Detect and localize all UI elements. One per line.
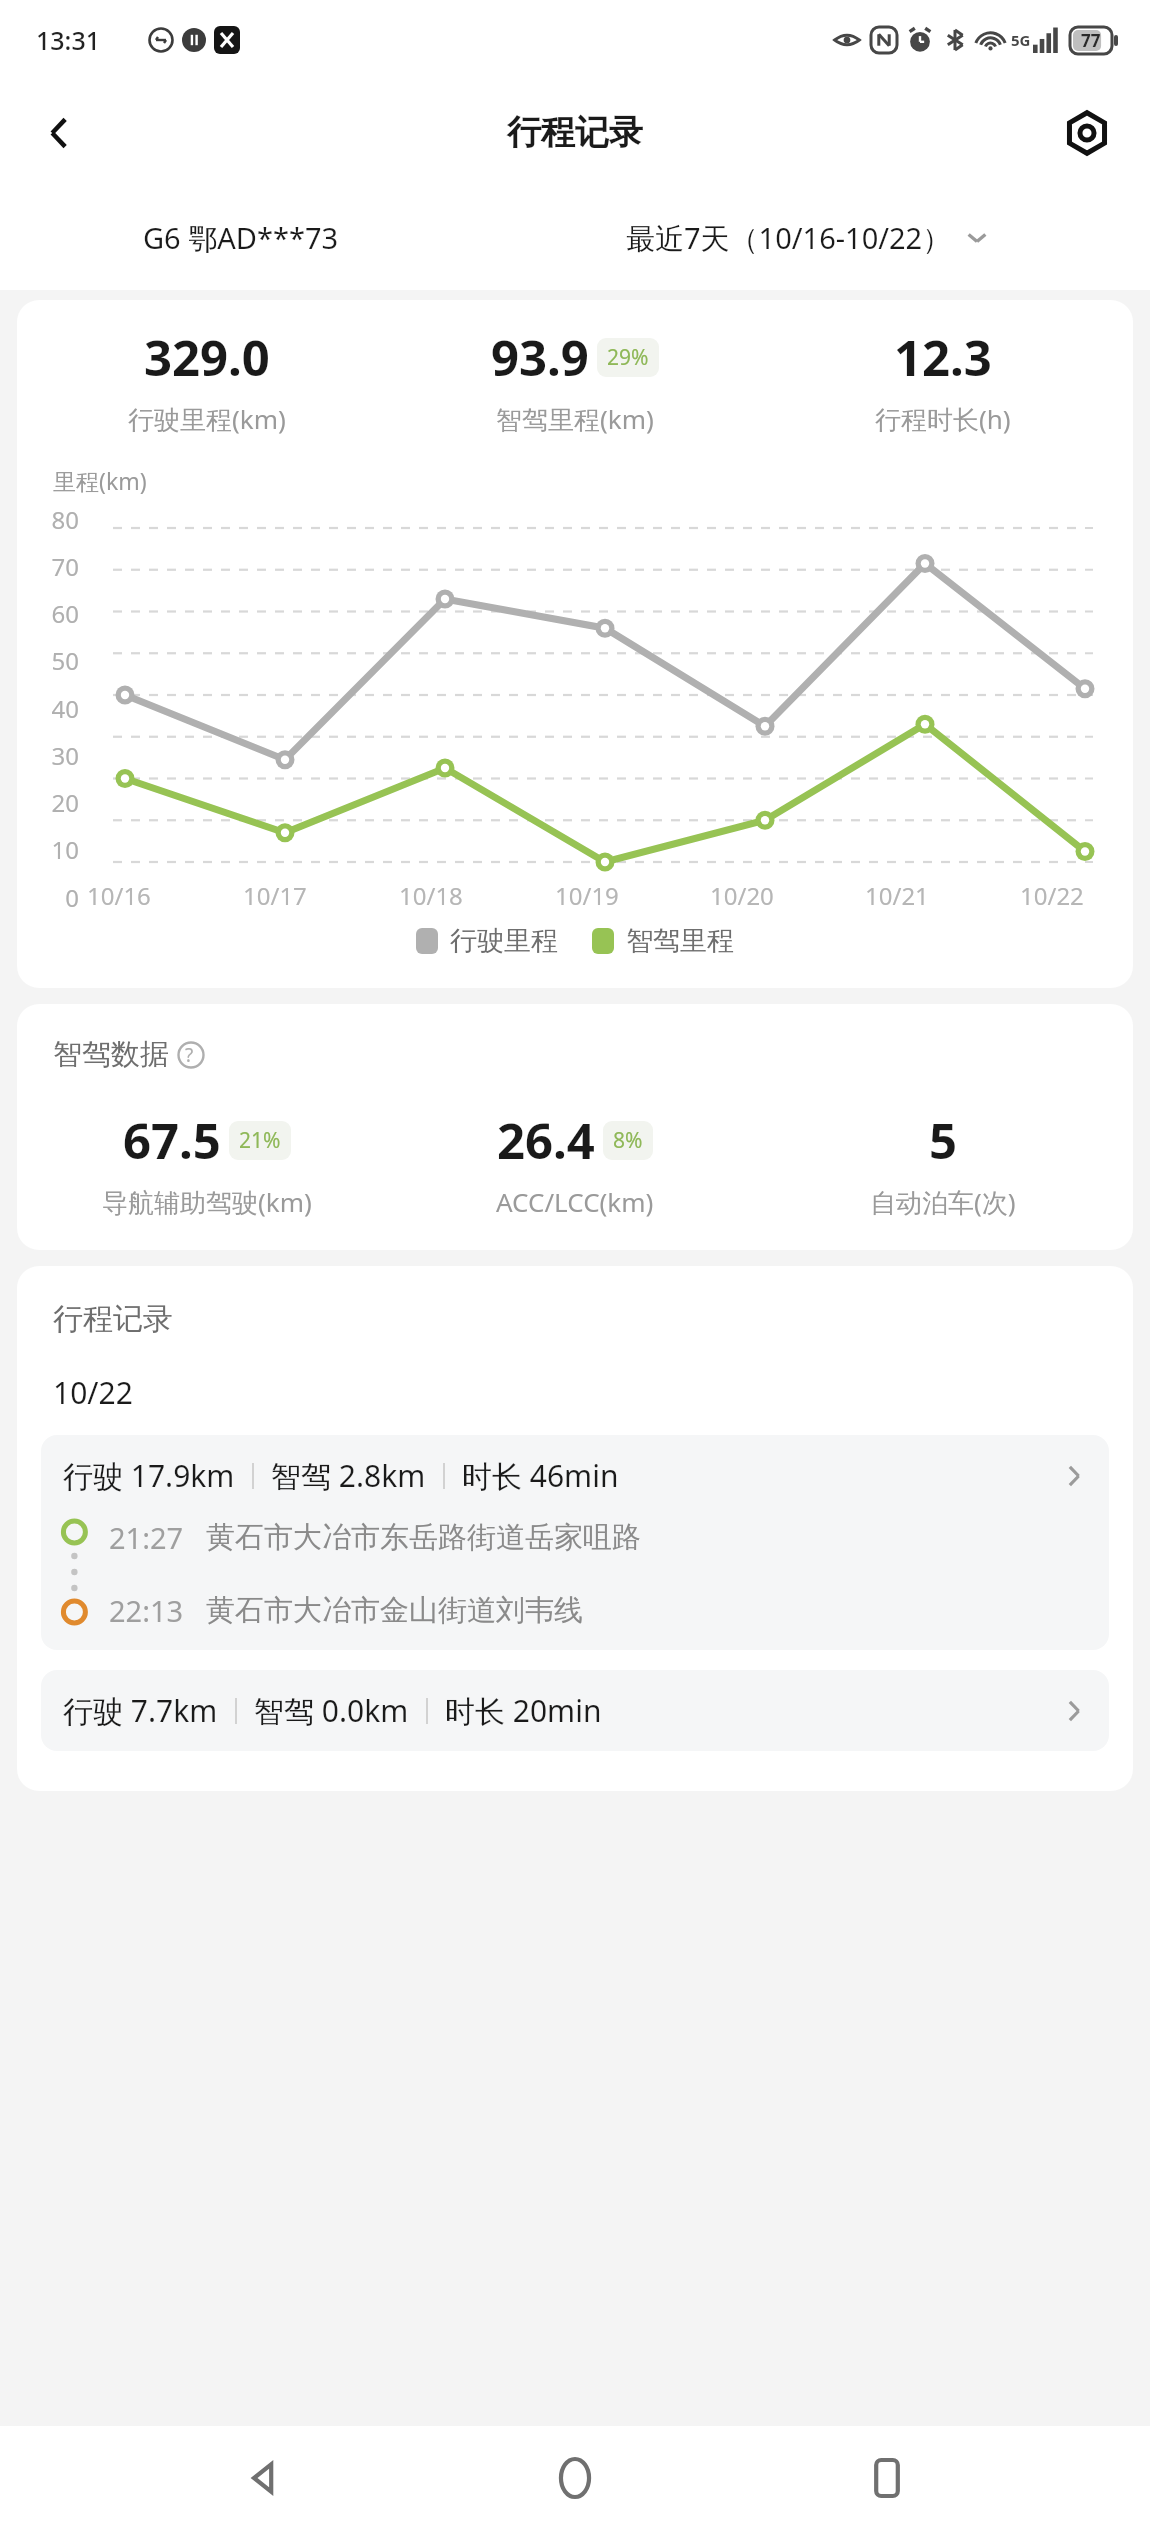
button[interactable]: Back (216, 2430, 312, 2526)
staticText: 10/21 (865, 879, 929, 912)
staticText: 5 (929, 1107, 958, 1174)
staticText: 21:27 (109, 1518, 184, 1557)
staticText: 智驾里程(km) (496, 401, 654, 437)
staticText: 行驶 7.7km (63, 1690, 218, 1731)
staticText: 26.4 (497, 1107, 595, 1174)
button[interactable]: Settings (1050, 96, 1124, 170)
staticText: 30 (23, 739, 79, 772)
staticText: 智驾里程 (626, 924, 734, 958)
staticText: 智驾 2.8km (271, 1455, 426, 1496)
staticText: 80 (23, 503, 79, 536)
staticText: 黄石市大冶市东岳路街道岳家咀路 (206, 1519, 641, 1556)
button[interactable]: G6 鄂AD***73 (0, 185, 482, 290)
staticText: 5G (1011, 30, 1031, 50)
staticText: 时长 46min (462, 1455, 619, 1496)
staticText: 10/22 (53, 1372, 133, 1413)
staticText: 10/19 (555, 879, 619, 912)
staticText: 10/22 (1020, 879, 1084, 912)
staticText: 导航辅助驾驶(km) (102, 1184, 312, 1220)
staticText: 21% (239, 1126, 281, 1155)
staticText: 行程记录 (53, 1300, 173, 1338)
staticText: 10/16 (87, 879, 151, 912)
staticText: 智驾数据 (53, 1036, 169, 1073)
staticText: 22:13 (109, 1591, 184, 1630)
staticText: 50 (23, 644, 79, 677)
staticText: 329.0 (144, 324, 270, 391)
staticText: 行程记录 (507, 111, 643, 154)
button[interactable]: 行驶 7.7km (41, 1670, 1109, 1751)
staticText: ? (185, 1042, 194, 1068)
staticText: 20 (23, 786, 79, 819)
staticText: 时长 20min (445, 1690, 602, 1731)
staticText: 60 (23, 597, 79, 630)
staticText: 10 (23, 833, 79, 866)
staticText: 0 (23, 881, 79, 914)
staticText: 10/20 (710, 879, 774, 912)
button[interactable]: Home (527, 2430, 623, 2526)
staticText: 70 (23, 550, 79, 583)
staticText: 8% (613, 1126, 643, 1155)
button[interactable]: 行驶 17.9km (41, 1435, 1109, 1650)
staticText: 10/17 (243, 879, 307, 912)
staticText: 最近7天（10/16-10/22） (626, 218, 952, 258)
staticText: 自动泊车(次) (870, 1184, 1016, 1220)
staticText: 29% (607, 343, 649, 372)
staticText: 77 (1081, 29, 1101, 52)
staticText: 67.5 (123, 1107, 221, 1174)
staticText: 40 (23, 692, 79, 725)
staticText: 黄石市大冶市金山街道刘韦线 (206, 1592, 583, 1629)
staticText: ACC/LCC(km) (496, 1184, 654, 1219)
staticText: 行程时长(h) (875, 401, 1011, 437)
staticText: 93.9 (491, 324, 589, 391)
staticText: 13:31 (36, 23, 101, 57)
staticText: 行驶 17.9km (63, 1455, 235, 1496)
staticText: 里程(km) (53, 465, 147, 496)
staticText: 行驶里程 (450, 924, 558, 958)
button[interactable]: Recents (839, 2430, 935, 2526)
staticText: 12.3 (894, 324, 992, 391)
staticText: G6 鄂AD***73 (143, 218, 339, 258)
button[interactable]: Back (22, 96, 96, 170)
staticText: 智驾 0.0km (254, 1690, 409, 1731)
button[interactable]: 智驾数据 (53, 1036, 214, 1073)
staticText: 10/18 (399, 879, 463, 912)
button[interactable]: 最近7天（10/16-10/22） (482, 185, 1132, 290)
staticText: 行驶里程(km) (128, 401, 286, 437)
